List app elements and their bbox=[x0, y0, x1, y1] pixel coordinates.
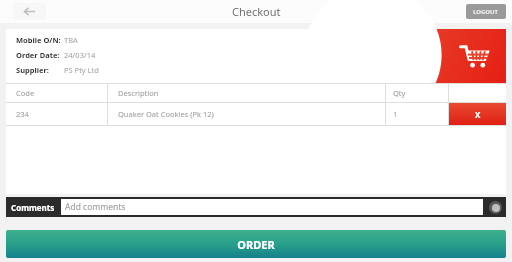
staticText: 1 bbox=[393, 109, 398, 119]
staticText: Qty bbox=[393, 88, 406, 98]
staticText: Order Date: bbox=[16, 50, 60, 60]
staticText: Comments bbox=[11, 202, 55, 213]
staticText: Supplier: bbox=[16, 65, 49, 75]
staticText: ORDER bbox=[237, 237, 275, 252]
staticText: 24/03/14 bbox=[64, 50, 96, 60]
staticText: X bbox=[475, 109, 481, 120]
staticText: TBA bbox=[64, 35, 78, 45]
staticText: Mobile O/N: bbox=[16, 35, 61, 45]
staticText: Add comments bbox=[65, 201, 126, 213]
button[interactable]: ORDER bbox=[6, 230, 506, 258]
staticText: Quaker Oat Cookies (Pk 12) bbox=[118, 109, 214, 119]
button[interactable]: Back bbox=[13, 3, 46, 20]
staticText: Checkout bbox=[232, 4, 281, 19]
staticText: LOGOUT bbox=[473, 8, 499, 16]
button[interactable]: LOGOUT bbox=[466, 4, 506, 19]
button[interactable]: Add comments bbox=[61, 199, 483, 215]
staticText: 234 bbox=[16, 109, 29, 119]
button[interactable]: Cart bbox=[406, 29, 506, 83]
button[interactable]: Voice input bbox=[484, 197, 506, 217]
staticText: PS Pty Ltd bbox=[64, 65, 99, 75]
staticText: Description bbox=[118, 88, 159, 98]
staticText: Code bbox=[16, 88, 35, 98]
button[interactable]: X bbox=[449, 103, 506, 125]
